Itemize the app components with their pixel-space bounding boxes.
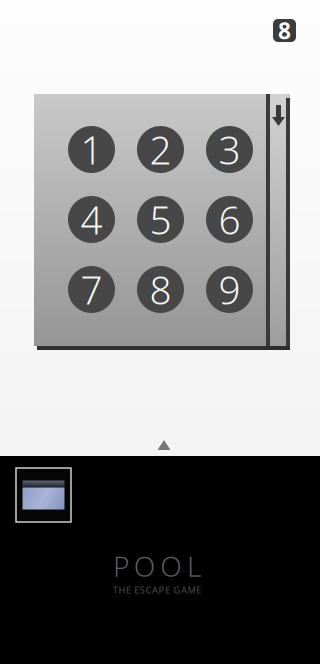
staticText: 8 [149,264,171,315]
staticText: 3 [218,124,240,175]
button[interactable]: Inventory item [16,468,71,522]
staticText: 1 [80,124,102,175]
staticText: 5 [149,194,171,245]
staticText: 9 [218,264,240,315]
button[interactable]: Move forward [149,435,179,457]
button[interactable]: 6 [206,196,253,243]
button[interactable]: 3 [206,126,253,173]
button[interactable]: 7 [68,266,115,313]
button[interactable]: 8 [137,266,184,313]
button[interactable]: 1 [68,126,115,173]
button[interactable]: 9 [206,266,253,313]
button[interactable]: 4 [68,196,115,243]
button[interactable]: 5 [137,196,184,243]
staticText: POOL [113,547,201,585]
staticText: 4 [80,194,102,245]
staticText: 2 [149,124,171,175]
button[interactable]: 2 [137,126,184,173]
staticText: 6 [218,194,240,245]
staticText: 7 [80,264,102,315]
staticText: 8 [278,15,291,45]
staticText: THE ESCAPE GAME [113,584,201,596]
button[interactable]: 8 [273,19,296,42]
